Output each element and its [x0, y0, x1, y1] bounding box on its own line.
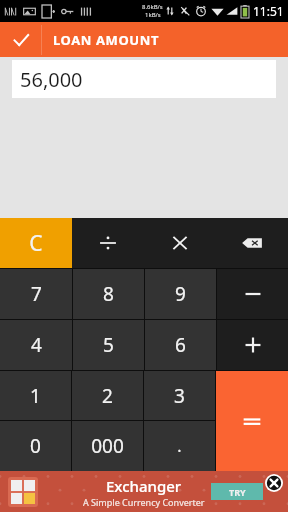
- staticText: 8.6kB/s: [142, 3, 163, 11]
- button[interactable]: 0: [0, 421, 71, 471]
- staticText: 11:51: [253, 3, 284, 19]
- button[interactable]: 9: [145, 269, 216, 319]
- button[interactable]: 1: [0, 371, 71, 420]
- staticText: 000: [91, 433, 124, 459]
- staticText: 56,000: [20, 66, 83, 93]
- button[interactable]: .: [144, 421, 215, 471]
- button[interactable]: 56,000: [12, 60, 276, 98]
- staticText: 4: [31, 332, 42, 358]
- button[interactable]: 4: [0, 320, 72, 370]
- button[interactable]: Exchanger icon: [0, 471, 288, 512]
- button[interactable]: C: [0, 218, 72, 268]
- staticText: 1kB/s: [145, 11, 161, 19]
- button[interactable]: 3: [144, 371, 215, 420]
- button[interactable]: LOAN AMOUNT: [42, 22, 288, 57]
- staticText: 3: [174, 383, 185, 409]
- staticText: C: [29, 229, 43, 258]
- staticText: 5: [103, 332, 114, 358]
- button[interactable]: TRY: [211, 483, 263, 500]
- button[interactable]: 6: [145, 320, 216, 370]
- staticText: 2: [102, 383, 113, 409]
- staticText: 0: [30, 433, 41, 459]
- button[interactable]: 8: [73, 269, 144, 319]
- staticText: 6: [175, 332, 186, 358]
- staticText: 8: [103, 281, 114, 307]
- staticText: LOAN AMOUNT: [53, 31, 160, 49]
- button[interactable]: 7: [0, 269, 72, 319]
- button[interactable]: 2: [72, 371, 143, 420]
- staticText: 1: [30, 383, 41, 409]
- staticText: 9: [175, 281, 186, 307]
- button[interactable]: Plus: [217, 320, 288, 370]
- other: Exchanger icon: [8, 477, 38, 507]
- button[interactable]: Confirm: [0, 22, 41, 57]
- button[interactable]: Divide: [72, 218, 144, 268]
- staticText: TRY: [229, 486, 246, 498]
- button[interactable]: 000: [72, 421, 143, 471]
- button[interactable]: Close ad: [265, 474, 283, 492]
- button[interactable]: Equals: [216, 371, 288, 471]
- button[interactable]: Multiply: [144, 218, 216, 268]
- staticText: .: [177, 435, 182, 457]
- button[interactable]: Backspace: [216, 218, 288, 268]
- staticText: Exchanger: [106, 476, 182, 496]
- staticText: A Simple Currency Converter: [83, 496, 205, 508]
- staticText: 7: [31, 281, 42, 307]
- button[interactable]: 5: [73, 320, 144, 370]
- button[interactable]: Minus: [217, 269, 288, 319]
